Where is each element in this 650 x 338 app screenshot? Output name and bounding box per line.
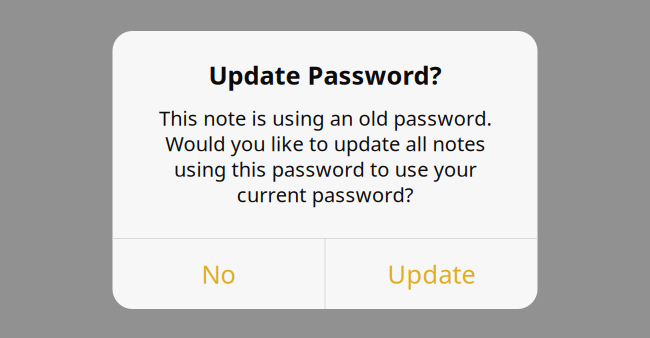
staticText: This note is using an old password. Woul…: [159, 105, 491, 208]
button[interactable]: Update: [325, 239, 537, 309]
staticText: Update: [387, 257, 475, 291]
button[interactable]: No: [112, 239, 324, 309]
staticText: Update Password?: [208, 58, 441, 92]
staticText: No: [201, 257, 235, 291]
